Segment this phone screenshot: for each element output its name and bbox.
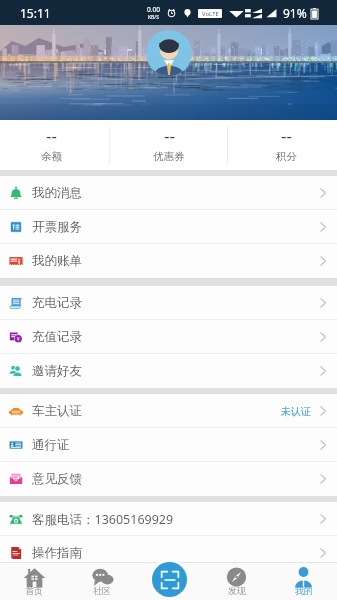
button[interactable]: 首页	[0, 562, 68, 600]
button[interactable]: 头像	[146, 30, 192, 76]
staticText: --	[281, 124, 292, 147]
staticText: 我的	[295, 585, 313, 596]
button[interactable]: 我的消息	[0, 176, 337, 210]
button[interactable]: 操作指南	[0, 536, 337, 570]
staticText: 发现	[228, 585, 246, 596]
button[interactable]: 我的	[270, 562, 337, 600]
button[interactable]: 客服电话：13605169929	[0, 502, 337, 536]
button[interactable]: 邀请好友	[0, 354, 337, 388]
button[interactable]: --	[0, 120, 107, 170]
button[interactable]: 充值记录	[0, 320, 337, 354]
staticText: 15:11	[20, 5, 51, 21]
staticText: 我的账单	[32, 253, 82, 269]
staticText: 充电记录	[32, 295, 82, 311]
staticText: 余额	[41, 150, 62, 163]
staticText: 意见反馈	[32, 471, 82, 487]
staticText: 我的消息	[32, 185, 82, 201]
button[interactable]: 社区	[68, 562, 136, 600]
staticText: KB/S	[148, 14, 159, 21]
staticText: --	[164, 124, 175, 147]
staticText: --	[46, 124, 57, 147]
staticText: 积分	[276, 150, 297, 163]
button[interactable]: 扫一扫	[152, 562, 187, 597]
staticText: 优惠券	[153, 150, 185, 163]
button[interactable]: 发现	[203, 562, 270, 600]
staticText: 开票服务	[32, 219, 82, 235]
staticText: 0.00	[147, 5, 160, 14]
button[interactable]: --	[230, 120, 337, 170]
staticText: VoLTE	[202, 10, 219, 18]
staticText: 邀请好友	[32, 363, 82, 379]
button[interactable]: 开票服务	[0, 210, 337, 244]
staticText: 操作指南	[32, 545, 82, 561]
staticText: 充值记录	[32, 329, 82, 345]
staticText: 91%	[283, 5, 307, 21]
staticText: 未认证	[281, 405, 311, 418]
staticText: 通行证	[32, 437, 70, 453]
button[interactable]: 车主认证	[0, 394, 337, 428]
button[interactable]: 意见反馈	[0, 462, 337, 496]
staticText: 客服电话：13605169929	[32, 511, 174, 528]
button[interactable]: --	[113, 120, 225, 170]
staticText: 社区	[93, 585, 111, 596]
button[interactable]: 充电记录	[0, 286, 337, 320]
button[interactable]: 我的账单	[0, 244, 337, 278]
staticText: 首页	[25, 585, 43, 596]
staticText: 车主认证	[32, 403, 82, 419]
button[interactable]: 通行证	[0, 428, 337, 462]
